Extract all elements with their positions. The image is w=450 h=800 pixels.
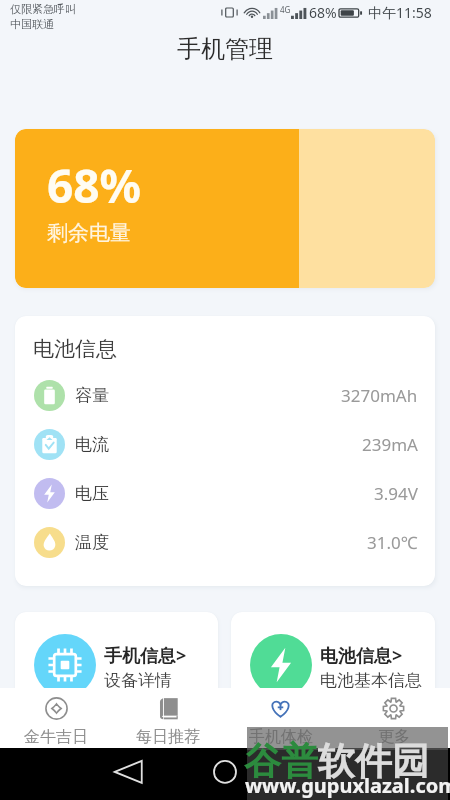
staticText: 电池信息 — [33, 336, 117, 362]
staticText: 电池基本信息 — [320, 670, 422, 691]
staticText: 电压 — [75, 483, 109, 504]
staticText: 剩余电量 — [47, 220, 131, 246]
staticText: 68% — [309, 3, 337, 22]
staticText: 4G — [280, 4, 291, 15]
staticText: 31.0℃ — [367, 531, 418, 554]
button[interactable]: 电压 — [15, 469, 435, 518]
button[interactable]: 容量 — [15, 371, 435, 420]
staticText: 手机信息> — [104, 643, 187, 668]
staticText: 每日推荐 — [136, 727, 200, 747]
button[interactable]: 手机体检 — [224, 688, 337, 748]
staticText: 仅限紧急呼叫 — [10, 2, 76, 16]
staticText: 温度 — [75, 532, 109, 553]
button[interactable]: 金牛吉日 — [0, 688, 112, 748]
button[interactable]: 68% — [15, 129, 435, 288]
button[interactable]: 电池信息> — [231, 612, 435, 712]
button[interactable]: 每日推荐 — [112, 688, 224, 748]
staticText: 容量 — [75, 385, 109, 406]
button[interactable]: 更多 — [337, 688, 450, 748]
staticText: 手机管理 — [177, 34, 273, 64]
staticText: 手机体检 — [249, 727, 313, 747]
staticText: 239mA — [362, 433, 418, 456]
staticText: 设备详情 — [104, 670, 172, 691]
staticText: 中午11:58 — [368, 3, 432, 22]
staticText: 电池信息> — [320, 643, 403, 668]
staticText: 3.94V — [374, 482, 418, 505]
staticText: 68% — [47, 154, 142, 217]
staticText: 中国联通 — [10, 17, 54, 30]
staticText: 金牛吉日 — [24, 727, 88, 747]
staticText: 更多 — [378, 727, 410, 747]
staticText: 谷普 — [244, 738, 318, 785]
button[interactable]: 温度 — [15, 518, 435, 567]
staticText: www.gupuxlazal.com — [245, 772, 450, 799]
button[interactable]: 电流 — [15, 420, 435, 469]
button[interactable]: 手机信息> — [15, 612, 218, 712]
staticText: 电流 — [75, 434, 109, 455]
staticText: 3270mAh — [341, 384, 418, 407]
staticText: 软件园 — [318, 738, 429, 785]
